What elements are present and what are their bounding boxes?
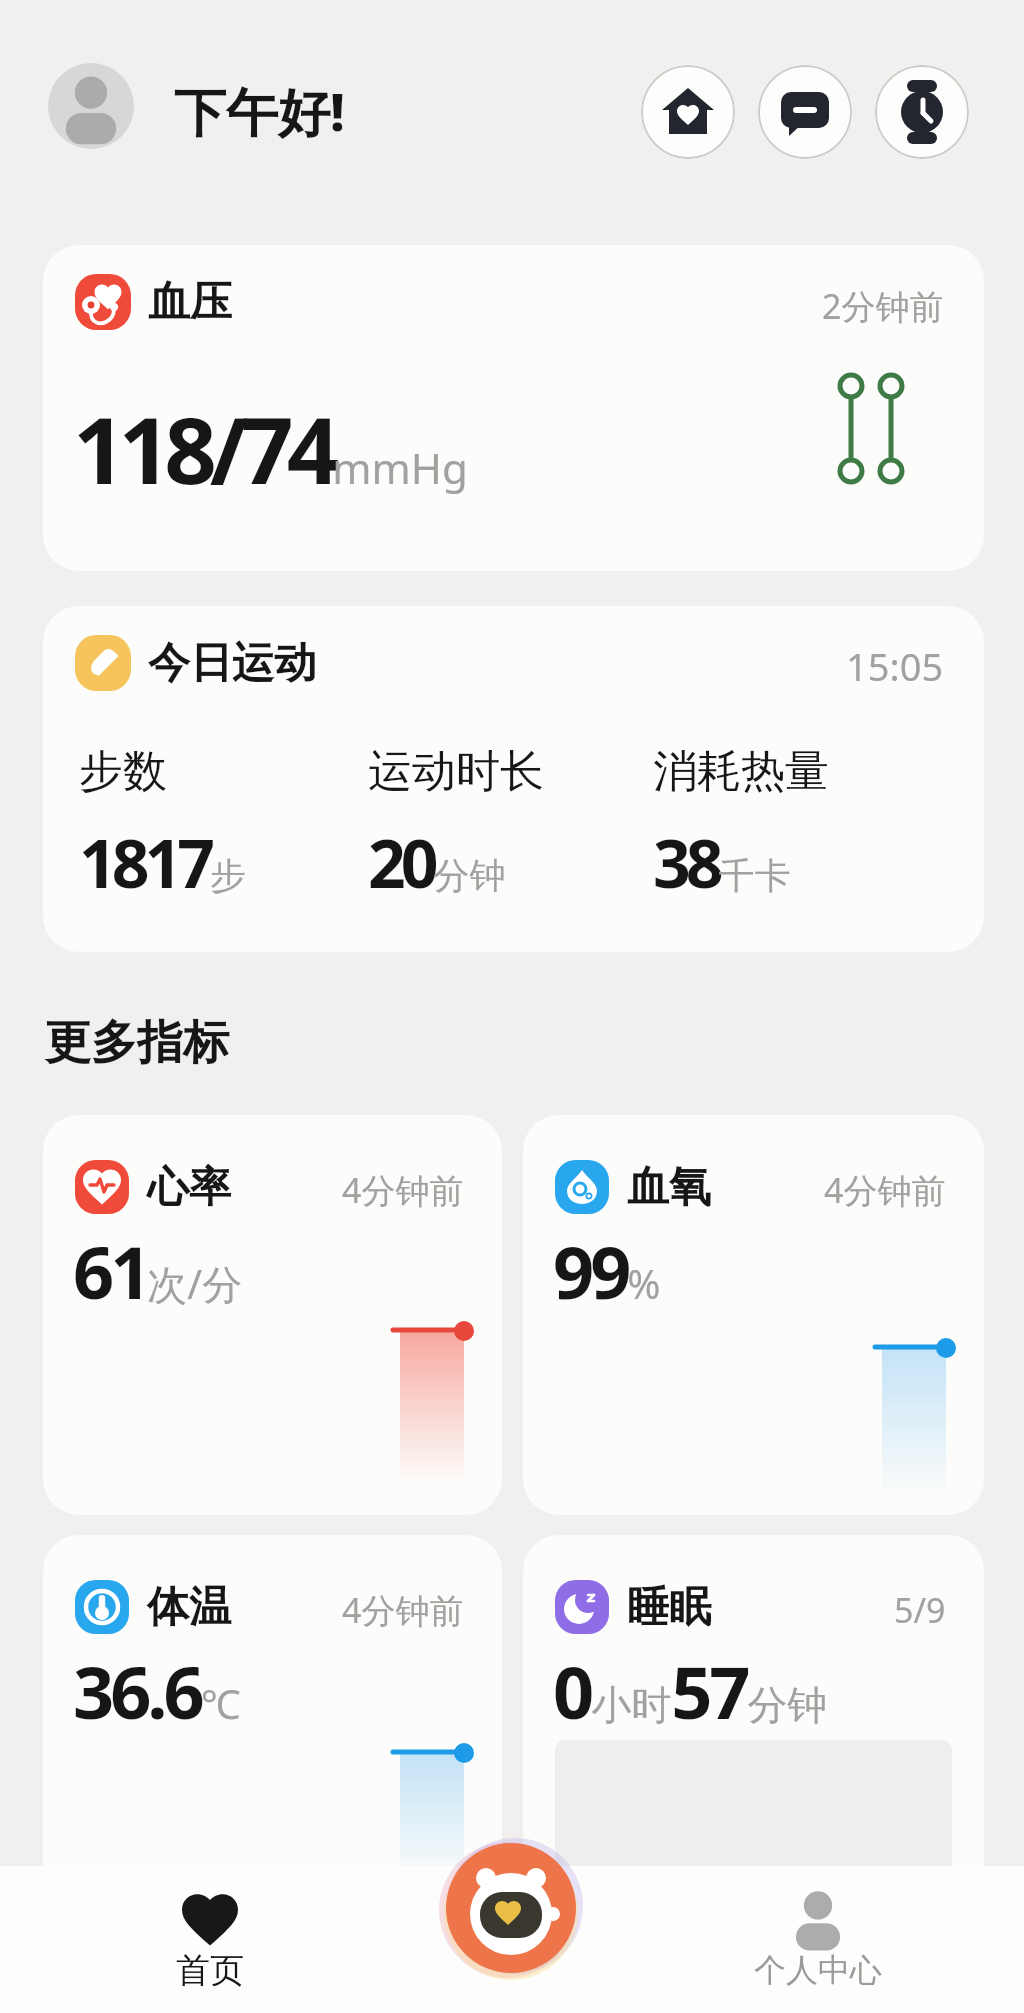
staticText: 血氧 bbox=[627, 1161, 711, 1214]
staticText: 4分钟前 bbox=[342, 1167, 464, 1213]
button[interactable] bbox=[758, 65, 852, 159]
button[interactable]: 今日运动 bbox=[43, 606, 984, 952]
staticText: 首页 bbox=[176, 1949, 244, 1992]
button[interactable] bbox=[875, 65, 969, 159]
button[interactable]: 体温 bbox=[43, 1535, 502, 1935]
button[interactable]: 血氧 bbox=[523, 1115, 984, 1515]
staticText: 2分钟前 bbox=[822, 283, 944, 329]
staticText: 下午好! bbox=[174, 75, 345, 146]
staticText: 睡眠 bbox=[627, 1581, 711, 1634]
staticText: 61次/分 bbox=[73, 1222, 243, 1320]
staticText: 运动时长 bbox=[368, 744, 544, 799]
staticText: 15:05 bbox=[846, 640, 944, 692]
staticText: 0小时57分钟 bbox=[553, 1642, 828, 1740]
staticText: 体温 bbox=[147, 1581, 231, 1634]
button[interactable] bbox=[48, 63, 134, 149]
button[interactable]: 睡眠 bbox=[523, 1535, 984, 1935]
staticText: 36.6℃ bbox=[73, 1642, 241, 1740]
button[interactable]: 心率 bbox=[43, 1115, 502, 1515]
staticText: 118/74mmHg bbox=[73, 386, 468, 511]
staticText: 步数 bbox=[79, 744, 167, 799]
staticText: 血压 bbox=[148, 276, 232, 329]
staticText: 99% bbox=[553, 1222, 661, 1320]
staticText: 今日运动 bbox=[148, 637, 316, 690]
staticText: 1817步 bbox=[79, 817, 247, 907]
staticText: 4分钟前 bbox=[342, 1587, 464, 1633]
button[interactable]: 血压 bbox=[43, 245, 984, 571]
button[interactable] bbox=[641, 65, 735, 159]
staticText: 5/9 bbox=[894, 1587, 946, 1633]
staticText: 38千卡 bbox=[653, 817, 791, 907]
staticText: 个人中心 bbox=[754, 1950, 882, 1990]
button[interactable]: 个人中心 bbox=[738, 1876, 898, 2006]
staticText: 4分钟前 bbox=[824, 1167, 946, 1213]
staticText: 消耗热量 bbox=[653, 744, 829, 799]
staticText: 更多指标 bbox=[45, 1014, 229, 1072]
button[interactable] bbox=[439, 1836, 583, 1980]
staticText: 20分钟 bbox=[368, 817, 506, 907]
button[interactable]: 首页 bbox=[150, 1876, 270, 2006]
staticText: 心率 bbox=[147, 1161, 231, 1214]
